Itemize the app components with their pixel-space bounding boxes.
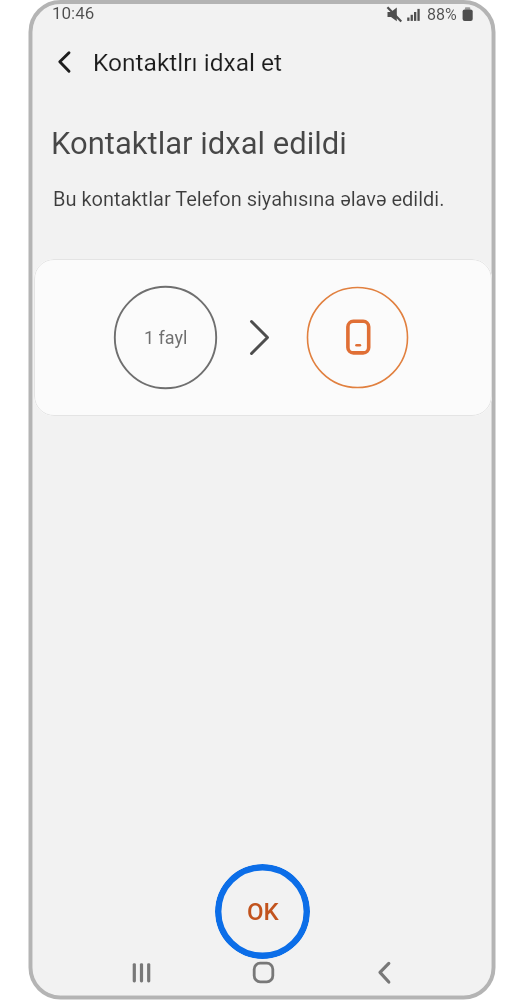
staticText: 88%: [427, 5, 457, 24]
button[interactable]: [46, 43, 86, 83]
button[interactable]: [120, 951, 163, 994]
button[interactable]: [242, 951, 285, 994]
staticText: Bu kontaktlar Telefon siyahısına əlavə e…: [53, 187, 445, 210]
staticText: OK: [247, 898, 279, 926]
button[interactable]: OK: [215, 864, 310, 959]
button[interactable]: [363, 951, 406, 994]
staticText: 1 fayl: [144, 327, 188, 348]
staticText: Kontaktlrı idxal et: [93, 48, 283, 77]
staticText: Kontaktlar idxal edildi: [51, 125, 347, 161]
staticText: 10:46: [52, 3, 95, 23]
